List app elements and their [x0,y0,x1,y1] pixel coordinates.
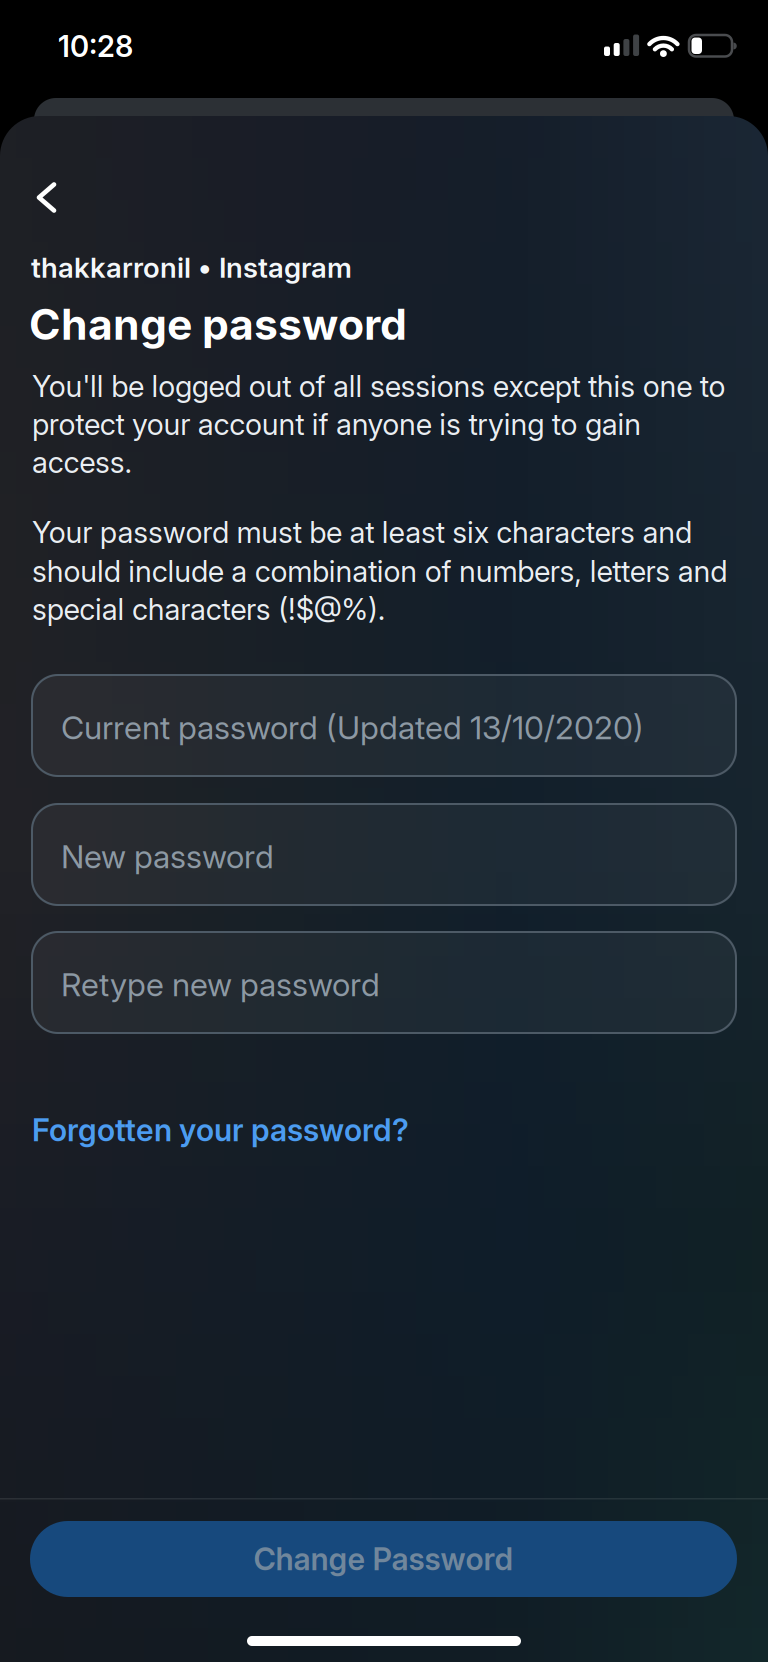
staticText: Current password (Updated 13/10/2020) [61,709,644,746]
button[interactable]: Forgotten your password? [32,1112,409,1148]
staticText: special characters (!$@%). [32,592,386,627]
button[interactable]: Change Password [30,1521,737,1597]
staticText: You'll be logged out of all sessions exc… [32,369,725,404]
staticText: New password [61,838,274,875]
staticText: Retype new password [61,966,380,1003]
staticText: Your password must be at least six chara… [32,515,692,550]
staticText: should include a combination of numbers,… [32,554,727,589]
staticText: Change Password [253,1541,513,1577]
button[interactable]: Retype new password [31,931,737,1034]
staticText: thakkarronil • Instagram [31,251,352,284]
staticText: protect your account if anyone is trying… [32,407,641,442]
button[interactable]: Back [24,174,72,222]
button[interactable]: New password [31,803,737,906]
staticText: access. [32,445,132,480]
staticText: Forgotten your password? [32,1112,409,1148]
button[interactable]: Current password (Updated 13/10/2020) [31,674,737,777]
staticText: Change password [29,299,407,349]
staticText: 10:28 [58,29,133,64]
